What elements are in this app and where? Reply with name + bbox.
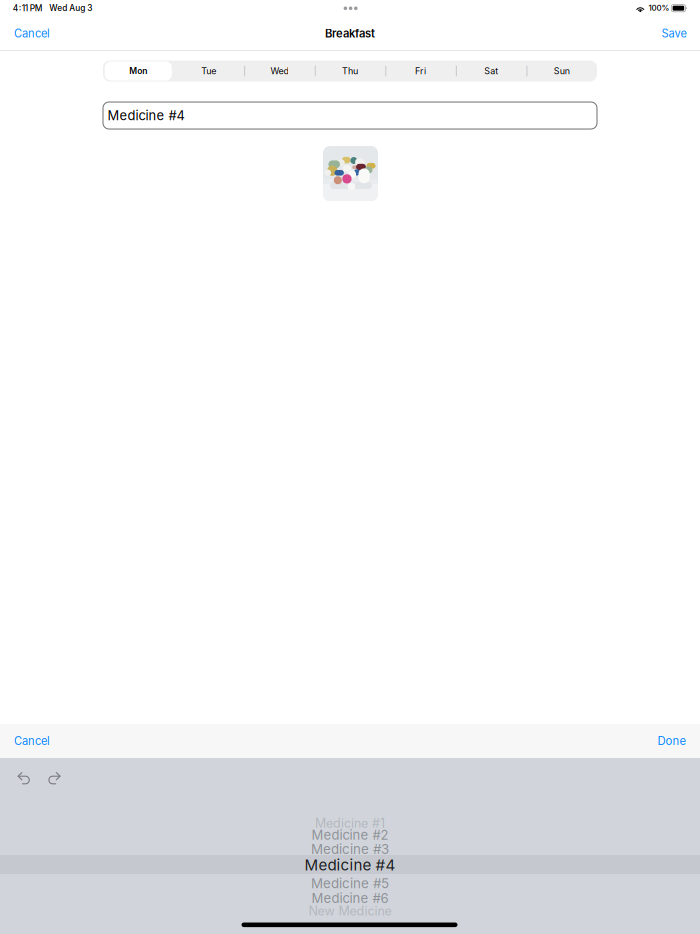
- staticText: Cancel: [14, 27, 50, 40]
- staticText: Wed: [270, 66, 288, 76]
- button[interactable]: Wed: [244, 60, 315, 81]
- staticText: Thu: [342, 66, 358, 76]
- staticText: Done: [657, 734, 686, 748]
- button[interactable]: Undo: [17, 772, 30, 785]
- staticText: 4:11 PM: [13, 3, 43, 13]
- staticText: Fri: [415, 66, 426, 76]
- staticText: Medicine #6: [311, 890, 388, 906]
- button[interactable]: Sat: [456, 60, 526, 81]
- staticText: Mon: [129, 66, 147, 76]
- button[interactable]: Done: [649, 724, 695, 758]
- staticText: Tue: [201, 66, 216, 76]
- staticText: Sat: [484, 66, 498, 76]
- staticText: Breakfast: [325, 27, 375, 40]
- button[interactable]: Cancel: [4, 724, 60, 758]
- button[interactable]: Mon: [103, 60, 174, 81]
- button[interactable]: Redo: [48, 772, 61, 785]
- staticText: Medicine #3: [311, 841, 389, 857]
- button[interactable]: Thu: [315, 60, 385, 81]
- button[interactable]: Tue: [174, 60, 244, 81]
- staticText: Medicine #1: [315, 816, 385, 831]
- staticText: Cancel: [14, 734, 50, 748]
- button[interactable]: Sun: [526, 60, 597, 81]
- staticText: Save: [661, 27, 686, 40]
- staticText: New Medicine: [308, 903, 391, 919]
- button[interactable]: Cancel: [3, 17, 61, 49]
- staticText: Sun: [554, 66, 570, 76]
- staticText: Medicine #4: [304, 856, 395, 874]
- button[interactable]: Save: [650, 17, 698, 49]
- button[interactable]: Fri: [385, 60, 456, 81]
- staticText: Medicine #5: [311, 875, 389, 891]
- staticText: 100%: [649, 3, 670, 13]
- staticText: Medicine #4: [107, 108, 184, 123]
- staticText: Medicine #2: [311, 827, 388, 843]
- staticText: Wed Aug 3: [49, 3, 92, 13]
